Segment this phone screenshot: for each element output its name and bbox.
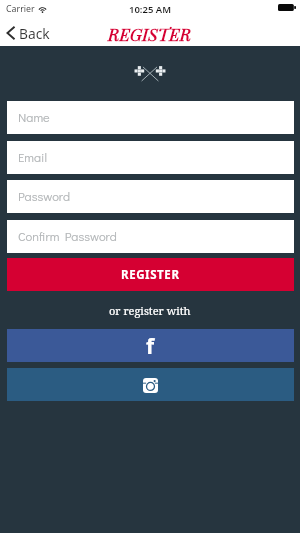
- button[interactable]: Email: [7, 141, 294, 174]
- staticText: or register with: [109, 303, 191, 318]
- button[interactable]: Password: [7, 180, 294, 213]
- staticText: Back: [19, 24, 50, 43]
- button[interactable]: Back: [0, 20, 58, 46]
- button[interactable]: Confirm Password: [7, 220, 294, 253]
- staticText: Password: [18, 188, 71, 205]
- button[interactable]: REGISTER: [7, 258, 294, 291]
- button[interactable]: Register with Facebook: [7, 329, 294, 362]
- button[interactable]: Register with Instagram: [7, 368, 294, 401]
- button[interactable]: Name: [7, 101, 294, 134]
- staticText: 10:25 AM: [129, 3, 172, 16]
- staticText: Confirm Password: [18, 228, 117, 245]
- staticText: Email: [18, 149, 48, 166]
- staticText: Carrier: [6, 3, 35, 15]
- staticText: REGISTER: [121, 267, 180, 283]
- staticText: REGISTER: [108, 23, 192, 46]
- staticText: f: [146, 332, 155, 361]
- staticText: Name: [18, 109, 50, 126]
